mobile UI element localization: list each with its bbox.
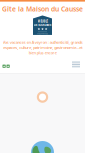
button[interactable]: Clévacances bbox=[6, 65, 10, 68]
staticText: ATOUT FRANCE bbox=[37, 33, 48, 35]
staticText: Gîte la Maison du Causse bbox=[2, 5, 83, 13]
staticText: Vos vacances en Aveyron : authenticité, … bbox=[2, 39, 82, 55]
button[interactable]: Choisir la langue bbox=[72, 61, 80, 67]
button[interactable]: Gîtes de France bbox=[2, 65, 6, 68]
staticText: MEUBLÉ bbox=[37, 20, 47, 23]
staticText: DE TOURISME bbox=[34, 23, 51, 27]
